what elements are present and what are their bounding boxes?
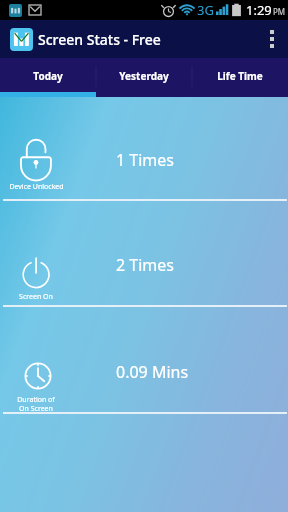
staticText: Yesterday bbox=[119, 69, 169, 83]
staticText: Life Time bbox=[217, 69, 263, 83]
staticText: 1:29 bbox=[246, 1, 272, 19]
button[interactable]: More options bbox=[256, 20, 288, 58]
staticText: 0.09 Mins bbox=[116, 361, 189, 383]
button[interactable]: Today bbox=[0, 58, 96, 97]
button[interactable]: Screen On bbox=[0, 201, 288, 307]
staticText: Screen Stats - Free bbox=[38, 30, 161, 49]
button[interactable]: Life Time bbox=[192, 58, 288, 97]
staticText: PM bbox=[273, 6, 286, 17]
staticText: Screen On bbox=[19, 292, 53, 302]
staticText: Today bbox=[33, 69, 63, 83]
staticText: Duration of On Screen bbox=[17, 395, 55, 413]
staticText: 2 Times bbox=[116, 254, 174, 276]
button[interactable]: Duration of On Screen bbox=[0, 307, 288, 414]
staticText: Device Unlocked bbox=[9, 182, 64, 192]
staticText: 1 Times bbox=[116, 149, 174, 171]
staticText: 3G bbox=[197, 1, 214, 19]
button[interactable]: Device Unlocked bbox=[0, 97, 288, 201]
button[interactable]: Yesterday bbox=[96, 58, 192, 97]
